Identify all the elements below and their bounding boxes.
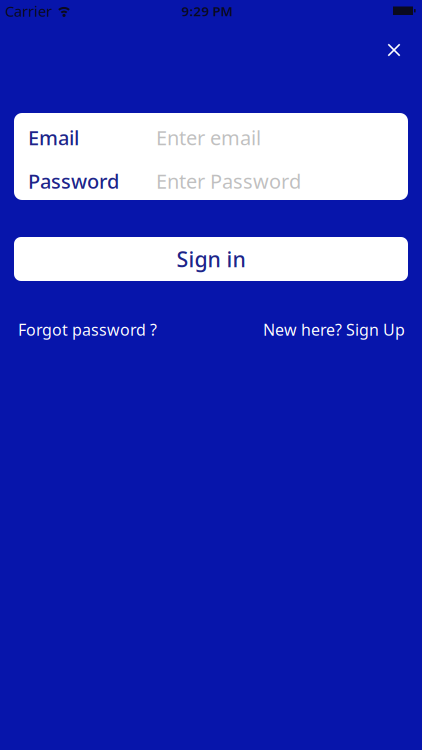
staticText: Sign in bbox=[176, 245, 245, 273]
staticText: Forgot password ? bbox=[18, 319, 157, 340]
staticText: Enter email bbox=[156, 124, 261, 151]
staticText: New here? Sign Up bbox=[263, 319, 405, 340]
staticText: Password bbox=[28, 168, 119, 194]
staticText: Email bbox=[28, 124, 79, 151]
staticText: Carrier bbox=[5, 1, 52, 21]
staticText: Enter Password bbox=[156, 168, 301, 194]
staticText: 9:29 PM bbox=[181, 2, 232, 20]
